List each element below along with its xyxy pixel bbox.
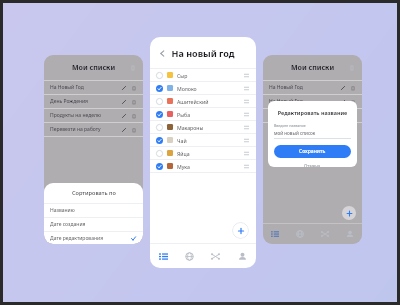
button[interactable]: Reorder Сыр bbox=[242, 71, 250, 79]
button[interactable]: Edit На Новый Год bbox=[339, 112, 347, 120]
staticText: Дате редактирования bbox=[50, 235, 104, 242]
staticText: Чай bbox=[177, 137, 187, 144]
button[interactable]: Молоко bbox=[150, 82, 256, 94]
button[interactable]: На Новый Год bbox=[263, 109, 362, 122]
button[interactable]: Дате создания bbox=[44, 218, 143, 231]
button[interactable]: Add list bbox=[342, 206, 356, 220]
button[interactable]: Reorder Макароны bbox=[242, 123, 250, 131]
button[interactable]: Delete День Рождения bbox=[130, 98, 138, 106]
button[interactable]: Названию bbox=[44, 204, 143, 217]
button[interactable]: Дате редактирования bbox=[44, 232, 143, 244]
button[interactable]: Edit На Новый Год bbox=[339, 98, 347, 106]
staticText: На Новый Год bbox=[269, 98, 303, 105]
button[interactable]: Sort bbox=[347, 63, 356, 72]
button[interactable]: Reorder Ашитейский bbox=[242, 97, 250, 105]
button[interactable]: Add item bbox=[232, 222, 249, 239]
staticText: Редактировать название bbox=[274, 109, 351, 116]
staticText: Отмена bbox=[304, 163, 321, 167]
button[interactable]: Lists bbox=[150, 244, 176, 268]
staticText: На Новый Год bbox=[269, 112, 303, 119]
staticText: Названию bbox=[50, 207, 75, 214]
staticText: мой новый список bbox=[274, 130, 316, 136]
button[interactable]: Мука bbox=[150, 160, 256, 172]
staticText: На новый год bbox=[171, 47, 235, 59]
button[interactable]: Reorder Яйца bbox=[242, 149, 250, 157]
staticText: На Новый Год bbox=[50, 84, 84, 91]
button[interactable]: На Новый Год bbox=[263, 95, 362, 108]
staticText: Сохранить bbox=[299, 148, 326, 155]
staticText: Сортировать по bbox=[72, 189, 116, 197]
button[interactable]: Reorder Чай bbox=[242, 136, 250, 144]
staticText: Перевезти на работу bbox=[50, 126, 101, 133]
staticText: Ашитейский bbox=[177, 98, 209, 105]
button[interactable]: Сыр bbox=[150, 69, 256, 81]
staticText: Мука bbox=[177, 163, 190, 170]
button[interactable]: Delete На Новый Год bbox=[349, 84, 357, 92]
staticText: Дате создания bbox=[50, 221, 86, 228]
staticText: Продукты на неделю bbox=[50, 112, 101, 119]
button[interactable]: Чай bbox=[150, 134, 256, 146]
staticText: Рыба bbox=[177, 111, 191, 118]
button[interactable]: Profile bbox=[337, 224, 362, 244]
button[interactable]: Back bbox=[155, 46, 169, 60]
button[interactable]: Shared bbox=[202, 244, 229, 268]
staticText: На Новый Год bbox=[269, 84, 303, 91]
button[interactable]: Продукты на неделю bbox=[44, 109, 143, 122]
button[interactable]: Shared bbox=[312, 224, 337, 244]
staticText: День Рождения bbox=[50, 98, 88, 105]
button[interactable]: На Новый Год bbox=[44, 81, 143, 94]
button[interactable]: Profile bbox=[229, 244, 256, 268]
button[interactable]: Delete Продукты на неделю bbox=[130, 112, 138, 120]
button[interactable]: Edit На Новый Год bbox=[120, 84, 128, 92]
button[interactable]: На Новый Год bbox=[263, 81, 362, 94]
button[interactable]: Edit На Новый Год bbox=[339, 84, 347, 92]
button[interactable]: Lists bbox=[263, 224, 287, 244]
button[interactable]: Explore bbox=[287, 224, 312, 244]
button[interactable]: Delete На Новый Год bbox=[349, 98, 357, 106]
button[interactable]: Сохранить bbox=[274, 145, 351, 158]
button[interactable]: Рыба bbox=[150, 108, 256, 120]
button[interactable]: Edit Перевезти на работу bbox=[120, 126, 128, 134]
button[interactable]: Reorder Рыба bbox=[242, 110, 250, 118]
button[interactable]: Reorder Молоко bbox=[242, 84, 250, 92]
button[interactable]: Reorder Мука bbox=[242, 162, 250, 170]
button[interactable]: Яйца bbox=[150, 147, 256, 159]
staticText: Молоко bbox=[177, 85, 197, 92]
staticText: Сыр bbox=[177, 72, 188, 79]
button[interactable]: Перевезти на работу bbox=[44, 123, 143, 136]
staticText: Мои списки bbox=[291, 63, 335, 73]
staticText: Мои списки bbox=[72, 63, 116, 73]
button[interactable]: Sort bbox=[128, 63, 137, 72]
button[interactable]: Delete На Новый Год bbox=[130, 84, 138, 92]
button[interactable]: Edit Продукты на неделю bbox=[120, 112, 128, 120]
staticText: Введите название bbox=[274, 123, 306, 128]
button[interactable]: Ашитейский bbox=[150, 95, 256, 107]
button[interactable]: День Рождения bbox=[44, 95, 143, 108]
button[interactable]: Explore bbox=[176, 244, 202, 268]
button[interactable]: Отмена bbox=[274, 163, 351, 167]
staticText: Макароны bbox=[177, 124, 204, 131]
button[interactable]: Edit День Рождения bbox=[120, 98, 128, 106]
button[interactable]: Delete Перевезти на работу bbox=[130, 126, 138, 134]
staticText: Яйца bbox=[177, 150, 190, 157]
button[interactable]: Макароны bbox=[150, 121, 256, 133]
